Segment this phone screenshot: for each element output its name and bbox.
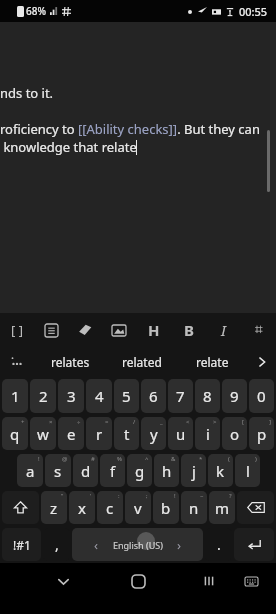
button[interactable]: h	[154, 454, 179, 487]
button[interactable]: 7	[168, 379, 193, 413]
button[interactable]: tag	[68, 313, 102, 347]
button[interactable]: w	[30, 417, 56, 450]
button[interactable]: More suggestions	[248, 347, 276, 377]
button[interactable]: Hide keyboard	[48, 566, 78, 596]
button[interactable]: note	[34, 313, 68, 347]
button[interactable]: f	[100, 454, 125, 487]
button[interactable]: B	[171, 313, 206, 347]
button[interactable]: z	[41, 491, 67, 524]
staticText: relates	[51, 354, 90, 370]
staticText: /	[133, 418, 136, 426]
staticText: .	[217, 535, 221, 554]
button[interactable]: Change keyboard	[238, 568, 264, 594]
button[interactable]: more	[241, 313, 276, 347]
button[interactable]: c	[97, 491, 123, 524]
staticText: h	[162, 461, 172, 481]
button[interactable]: ‹	[72, 528, 203, 561]
button[interactable]: I	[206, 313, 241, 347]
staticText: ⌗	[255, 323, 263, 337]
button[interactable]: related	[106, 347, 177, 377]
button[interactable]: g	[127, 454, 152, 487]
button[interactable]: m	[209, 491, 235, 524]
button[interactable]: i	[195, 417, 220, 450]
staticText: ~	[200, 492, 204, 500]
staticText: %	[117, 455, 122, 463]
button[interactable]: d	[73, 454, 98, 487]
button[interactable]: 5	[114, 379, 139, 413]
button[interactable]: Shift	[2, 491, 39, 524]
button[interactable]: a	[17, 454, 43, 487]
staticText: ;	[146, 492, 148, 500]
button[interactable]: n	[181, 491, 207, 524]
button[interactable]: Home	[123, 566, 153, 596]
staticText: related	[122, 354, 162, 370]
staticText: [	[242, 418, 244, 426]
button[interactable]: ,	[43, 528, 70, 561]
staticText: 0	[257, 386, 266, 406]
staticText: t	[124, 424, 130, 444]
staticText: "	[61, 492, 64, 500]
button[interactable]: 3	[58, 379, 84, 413]
button[interactable]: More options	[0, 347, 34, 377]
button[interactable]: relate	[177, 347, 248, 377]
button[interactable]: Enter	[234, 528, 274, 561]
button[interactable]: y	[141, 417, 166, 450]
staticText: j	[192, 461, 196, 481]
staticText: relate	[196, 354, 229, 370]
button[interactable]: s	[45, 454, 71, 487]
button[interactable]: 9	[222, 379, 247, 413]
button[interactable]: Backspace	[237, 491, 274, 524]
button[interactable]: 6	[141, 379, 166, 413]
staticText: :	[118, 492, 120, 500]
button[interactable]: p	[249, 417, 274, 450]
button[interactable]: H	[136, 313, 171, 347]
button[interactable]: e	[58, 417, 84, 450]
staticText: [ ]	[11, 321, 23, 339]
staticText: 5	[122, 386, 131, 406]
button[interactable]: l	[235, 454, 260, 487]
button[interactable]: Recent apps	[194, 566, 224, 596]
button[interactable]: x	[69, 491, 95, 524]
button[interactable]: 0	[249, 379, 274, 413]
staticText: q	[10, 424, 20, 444]
staticText: 7	[176, 386, 185, 406]
staticText: (	[228, 455, 230, 463]
button[interactable]: !#1	[2, 528, 41, 561]
staticText: H	[148, 320, 160, 340]
button[interactable]: j	[181, 454, 206, 487]
staticText: m	[215, 498, 230, 518]
staticText: I	[221, 320, 226, 340]
staticText: '	[90, 492, 92, 500]
staticText: nds to it.	[0, 84, 54, 102]
staticText: )	[255, 455, 257, 463]
button[interactable]: 1	[2, 379, 28, 413]
staticText: @	[62, 455, 68, 463]
staticText: 3	[67, 386, 76, 406]
button[interactable]: u	[168, 417, 193, 450]
staticText: s	[54, 461, 62, 481]
staticText: ,	[55, 535, 59, 554]
button[interactable]: k	[208, 454, 233, 487]
staticText: 8	[203, 386, 212, 406]
staticText: ‹	[94, 536, 99, 554]
staticText: +	[21, 418, 25, 426]
button[interactable]: v	[125, 491, 151, 524]
button[interactable]: brackets	[0, 313, 34, 347]
button[interactable]: t	[114, 417, 139, 450]
button[interactable]: 8	[195, 379, 220, 413]
staticText: k	[216, 461, 225, 481]
staticText: !	[174, 492, 176, 500]
button[interactable]: .	[205, 528, 232, 561]
button[interactable]: image	[102, 313, 136, 347]
button[interactable]: r	[86, 417, 112, 450]
staticText: 68%	[26, 4, 46, 18]
button[interactable]: relates	[34, 347, 106, 377]
staticText: p	[257, 424, 267, 444]
staticText: roficiency to [[Ability checks]]. But th…	[0, 120, 260, 138]
button[interactable]: o	[222, 417, 247, 450]
button[interactable]: b	[153, 491, 179, 524]
staticText: g	[135, 461, 145, 481]
button[interactable]: 4	[86, 379, 112, 413]
button[interactable]: 2	[30, 379, 56, 413]
button[interactable]: q	[2, 417, 28, 450]
